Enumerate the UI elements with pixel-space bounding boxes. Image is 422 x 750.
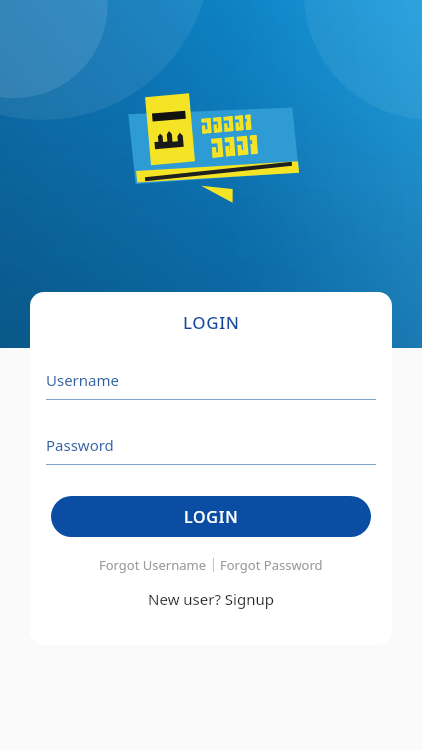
button[interactable]: Password bbox=[46, 417, 376, 465]
staticText: LOGIN bbox=[184, 506, 239, 528]
staticText: Forgot Username bbox=[99, 556, 207, 574]
staticText: Username bbox=[46, 370, 119, 390]
button[interactable]: Username bbox=[46, 352, 376, 400]
staticText: Password bbox=[46, 435, 114, 455]
button[interactable]: Forgot Password bbox=[220, 556, 323, 574]
staticText: LOGIN bbox=[183, 311, 240, 334]
button[interactable]: New user? Signup bbox=[148, 589, 274, 609]
staticText: New user? Signup bbox=[148, 589, 274, 609]
staticText: Forgot Password bbox=[220, 556, 323, 574]
button[interactable]: LOGIN bbox=[51, 496, 371, 537]
button[interactable]: Forgot Username bbox=[99, 556, 207, 574]
